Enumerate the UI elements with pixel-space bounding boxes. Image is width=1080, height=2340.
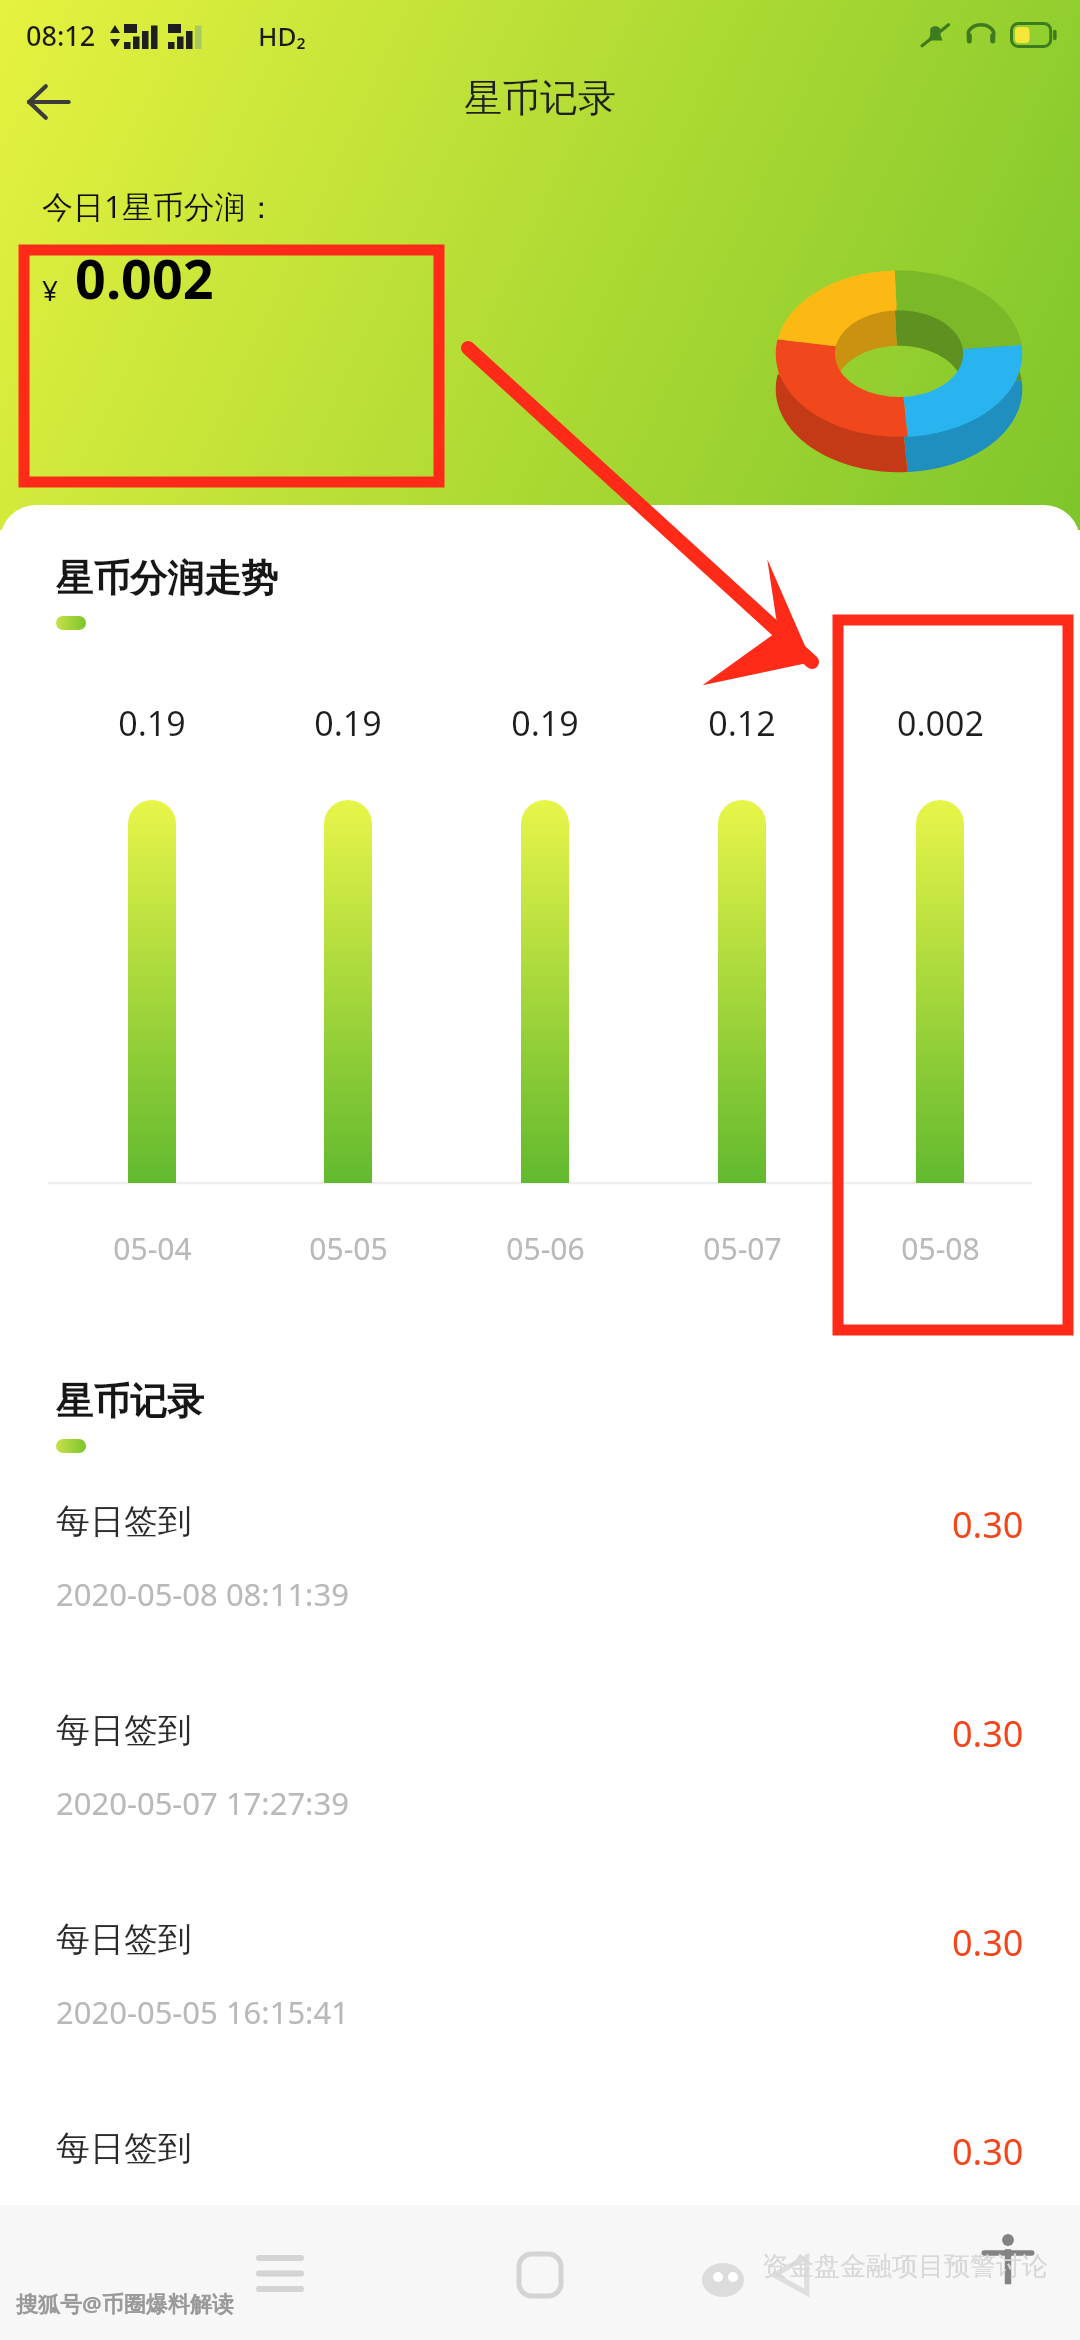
- button[interactable]: Accessibility: [968, 2220, 1048, 2300]
- staticText: 星币分润走势: [56, 555, 278, 602]
- staticText: 0.19: [314, 700, 382, 746]
- staticText: 08:12: [26, 17, 96, 54]
- staticText: 每日签到: [56, 2127, 192, 2170]
- staticText: 0.19: [511, 700, 579, 746]
- staticText: 每日签到: [56, 1709, 192, 1752]
- staticText: 0.30: [952, 1918, 1024, 1967]
- staticText: 0.19: [118, 700, 186, 746]
- staticText: 今日1星币分润：: [42, 185, 277, 227]
- staticText: 2020-05-07 17:27:39: [56, 1782, 349, 1824]
- staticText: HD₂: [258, 18, 306, 53]
- staticText: 0.30: [952, 1500, 1024, 1549]
- staticText: 2020-05-08 08:11:39: [56, 1573, 349, 1615]
- button[interactable]: Home: [495, 2230, 585, 2320]
- staticText: 搜狐号@币圈爆料解读: [16, 2288, 234, 2318]
- button[interactable]: Back: [12, 66, 84, 138]
- staticText: 05-04: [113, 1228, 192, 1269]
- staticText: 星币记录: [0, 74, 1080, 122]
- staticText: 0.30: [952, 2127, 1024, 2176]
- staticText: 2020-05-05 16:15:41: [56, 1991, 349, 2033]
- button[interactable]: Back: [745, 2230, 835, 2320]
- staticText: 0.002: [75, 241, 214, 315]
- button[interactable]: Recent apps: [235, 2230, 325, 2320]
- staticText: 星币记录: [56, 1378, 204, 1425]
- button[interactable]: 每日签到: [0, 1709, 1080, 1889]
- staticText: 0.30: [952, 1709, 1024, 1758]
- staticText: 0.002: [897, 700, 984, 746]
- button[interactable]: 每日签到: [0, 1500, 1080, 1680]
- staticText: 资金盘金融项目预警讨论: [762, 2250, 1048, 2283]
- staticText: 每日签到: [56, 1918, 192, 1961]
- button[interactable]: 每日签到: [0, 2127, 1080, 2217]
- staticText: 05-07: [703, 1228, 782, 1269]
- staticText: ¥: [42, 271, 59, 309]
- staticText: 每日签到: [56, 1500, 192, 1543]
- staticText: 0.12: [708, 700, 776, 746]
- staticText: 05-06: [506, 1228, 585, 1269]
- button[interactable]: 每日签到: [0, 1918, 1080, 2098]
- staticText: 05-08: [901, 1228, 980, 1269]
- staticText: 05-05: [309, 1228, 388, 1269]
